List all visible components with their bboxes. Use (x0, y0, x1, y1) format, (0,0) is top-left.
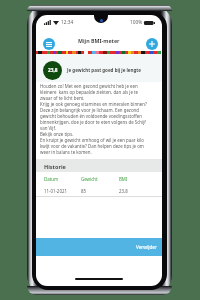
staticText: zwaar of te licht bent. (40, 95, 85, 101)
staticText: kwijt voor de vakantie? Dan helpen deze … (40, 143, 144, 149)
staticText: gewicht behouden én voldoende voedingsst… (40, 113, 142, 119)
staticText: Houden zo! Met een gezond gewicht heb je… (40, 83, 138, 89)
staticText: van Vijf. (40, 125, 57, 131)
button[interactable]: Toevoegen (146, 38, 158, 50)
staticText: 23,8 (48, 67, 58, 74)
staticText: binnenkrijgen, doe je door te eten volge… (40, 119, 146, 125)
button[interactable]: Menu (43, 38, 55, 50)
staticText: 23,8 (119, 188, 128, 194)
staticText: 100% (130, 19, 143, 26)
button[interactable]: Verwijder (36, 238, 162, 256)
staticText: Gewicht (81, 176, 98, 182)
staticText: weer in balans te komen. (40, 149, 92, 155)
staticText: kleinere kans op bepaalde ziekten, dan a… (40, 89, 139, 95)
button[interactable]: 11-01-2021 (36, 184, 162, 196)
staticText: Je gewicht past goed bij je lengte (67, 67, 141, 73)
staticText: BMI (119, 176, 128, 182)
staticText: Verwijder (136, 244, 157, 250)
staticText: Mijn BMI-meter (78, 37, 120, 44)
staticText: Historie (44, 163, 66, 170)
staticText: En kruipt je gewicht omhoog of wil je ee… (40, 137, 144, 143)
staticText: 85 (81, 188, 87, 194)
staticText: Deze zijn belangrijk voor je lichaam. Ee… (40, 107, 139, 113)
staticText: 12:34 (61, 19, 74, 26)
staticText: Bekijk onze tips. (40, 131, 74, 137)
staticText: 11-01-2021 (44, 188, 67, 194)
staticText: Datum (44, 176, 59, 182)
staticText: Krijg je ook genoeg vitamines en mineral… (40, 101, 147, 107)
